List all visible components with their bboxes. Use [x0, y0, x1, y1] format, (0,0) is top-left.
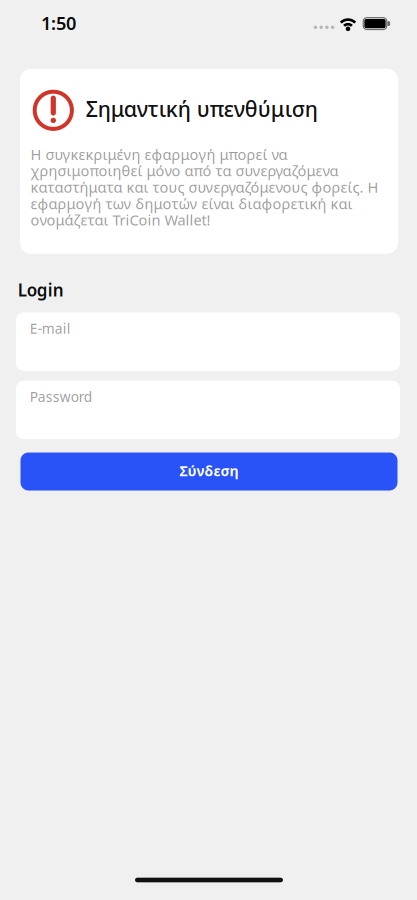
button[interactable]: Σύνδεση	[20, 452, 397, 490]
staticText: Password	[30, 387, 92, 406]
staticText: Σημαντική υπενθύμιση	[86, 94, 318, 123]
button[interactable]: E-mail	[16, 312, 400, 371]
staticText: Η συγκεκριμένη εφαρμογή μπορεί να	[30, 144, 287, 164]
staticText: E-mail	[30, 319, 71, 338]
staticText: καταστήματα και τους συνεργαζόμενους φορ…	[30, 177, 378, 197]
staticText: χρησιμοποιηθεί μόνο από τα συνεργαζόμενα	[30, 161, 338, 181]
staticText: Login	[18, 278, 64, 302]
staticText: ονομάζεται TriCoin Wallet!	[30, 210, 210, 230]
staticText: Σύνδεση	[179, 461, 238, 480]
staticText: εφαρμογή των δημοτών είναι διαφορετική κ…	[30, 194, 352, 213]
button[interactable]: Password	[16, 381, 400, 439]
staticText: 1:50	[41, 11, 76, 35]
